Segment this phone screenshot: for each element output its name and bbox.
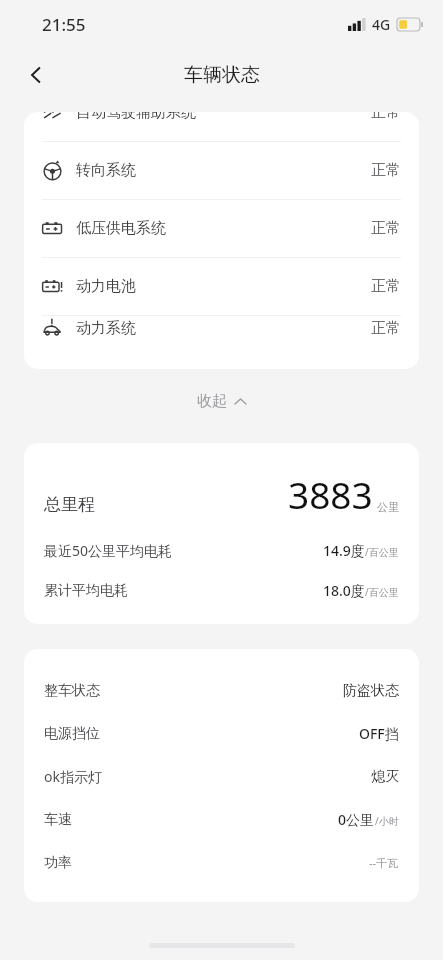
staticText: /百公里: [365, 585, 399, 599]
staticText: 转向系统: [76, 161, 136, 180]
staticText: 动力电池: [76, 277, 136, 296]
staticText: 累计平均电耗: [44, 582, 128, 600]
button[interactable]: 动力系统: [24, 316, 419, 341]
button[interactable]: ok指示灯: [44, 755, 399, 798]
staticText: 总里程: [44, 494, 95, 515]
staticText: 正常: [371, 219, 401, 238]
staticText: 4G: [372, 15, 391, 34]
staticText: 动力系统: [76, 319, 136, 338]
staticText: 功率: [44, 854, 72, 872]
staticText: 车速: [44, 811, 72, 829]
staticText: 18.0度: [323, 581, 365, 600]
button[interactable]: 电源挡位: [44, 712, 399, 755]
staticText: 电源挡位: [44, 725, 100, 743]
staticText: 14.9度: [323, 541, 365, 560]
staticText: 正常: [371, 112, 401, 122]
staticText: 自动驾驶辅助系统: [76, 112, 196, 122]
staticText: 防盗状态: [343, 682, 399, 700]
staticText: 0公里: [338, 810, 375, 829]
staticText: --千瓦: [369, 855, 399, 870]
button[interactable]: 车速: [44, 798, 399, 841]
button[interactable]: 低压供电系统: [24, 200, 419, 257]
staticText: /百公里: [365, 545, 399, 559]
button[interactable]: 收起: [0, 392, 443, 411]
staticText: 车辆状态: [184, 63, 260, 87]
staticText: ok指示灯: [44, 767, 102, 786]
staticText: 低压供电系统: [76, 219, 166, 238]
staticText: OFF挡: [359, 724, 399, 743]
button[interactable]: 转向系统: [24, 142, 419, 199]
button[interactable]: 功率: [44, 841, 399, 884]
staticText: 正常: [371, 161, 401, 180]
staticText: 21:55: [42, 13, 86, 36]
staticText: /小时: [375, 814, 399, 828]
button[interactable]: 动力电池: [24, 258, 419, 315]
button[interactable]: Back: [14, 53, 58, 97]
staticText: 正常: [371, 319, 401, 338]
staticText: 正常: [371, 277, 401, 296]
staticText: 收起: [197, 392, 227, 411]
staticText: 3883: [288, 469, 373, 519]
staticText: 整车状态: [44, 682, 100, 700]
button[interactable]: 整车状态: [44, 669, 399, 712]
staticText: 公里: [377, 500, 399, 514]
staticText: 最近50公里平均电耗: [44, 541, 173, 560]
staticText: 熄灭: [371, 768, 399, 786]
button[interactable]: 自动驾驶辅助系统: [24, 112, 419, 141]
